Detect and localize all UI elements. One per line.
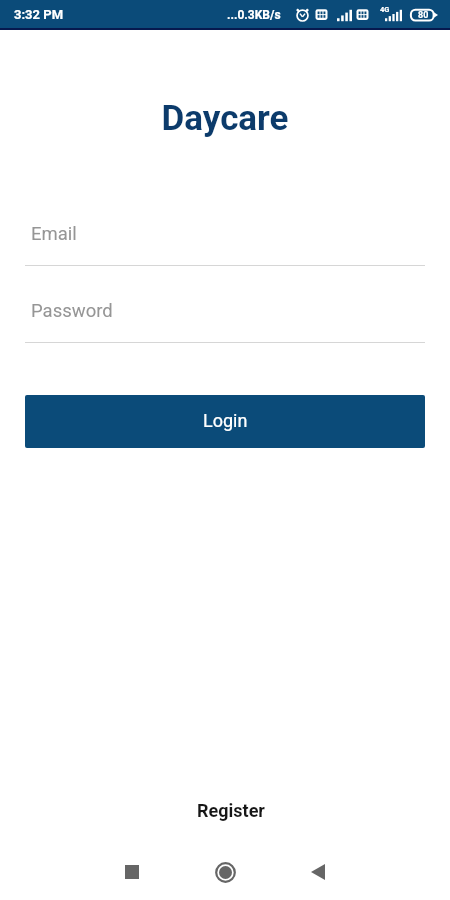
staticText: Password [31,300,113,322]
staticText: Email [31,223,77,245]
staticText: Login [203,410,248,431]
button[interactable]: Register [6,794,450,826]
button[interactable]: Back [294,848,342,896]
staticText: 4G [380,5,390,14]
staticText: Daycare [0,98,450,139]
button[interactable]: Login [25,395,425,448]
button[interactable]: Home [201,848,249,896]
staticText: Register [197,800,265,821]
button[interactable]: Password [25,288,425,343]
button[interactable]: Recent apps [108,848,156,896]
staticText: 3:32 PM [14,7,64,22]
staticText: 80 [418,10,429,21]
button[interactable]: Email [25,211,425,266]
staticText: ...0.3KB/s [227,8,281,22]
